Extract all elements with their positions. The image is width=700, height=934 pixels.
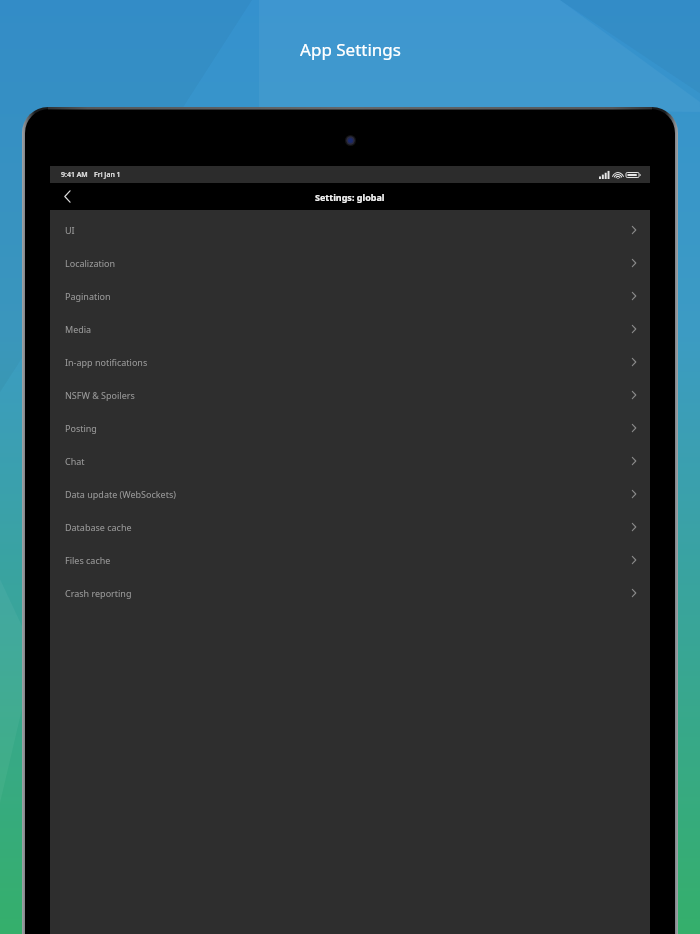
button[interactable]: Database cache xyxy=(50,510,650,543)
staticText: In-app notifications xyxy=(65,356,148,368)
staticText: Localization xyxy=(65,257,116,269)
staticText: NSFW & Spoilers xyxy=(65,389,135,401)
staticText: Crash reporting xyxy=(65,587,132,599)
button[interactable]: Localization xyxy=(50,246,650,279)
staticText: App Settings xyxy=(300,38,401,61)
staticText: Chat xyxy=(65,455,85,467)
staticText: UI xyxy=(65,224,75,236)
staticText: Settings: global xyxy=(315,191,385,203)
staticText: Data update (WebSockets) xyxy=(65,488,176,500)
button[interactable]: Chat xyxy=(50,444,650,477)
button[interactable]: Pagination xyxy=(50,279,650,312)
staticText: Fri Jan 1 xyxy=(94,170,121,180)
button[interactable]: Media xyxy=(50,312,650,345)
staticText: Pagination xyxy=(65,290,111,302)
button[interactable]: Data update (WebSockets) xyxy=(50,477,650,510)
button[interactable]: Posting xyxy=(50,411,650,444)
staticText: Files cache xyxy=(65,554,111,566)
button[interactable]: NSFW & Spoilers xyxy=(50,378,650,411)
button[interactable]: Crash reporting xyxy=(50,576,650,609)
button[interactable]: Files cache xyxy=(50,543,650,576)
staticText: Posting xyxy=(65,422,97,434)
staticText: 9:41 AM xyxy=(61,170,88,180)
button[interactable]: Back xyxy=(50,183,84,210)
staticText: Database cache xyxy=(65,521,132,533)
button[interactable]: In-app notifications xyxy=(50,345,650,378)
button[interactable]: UI xyxy=(50,213,650,246)
staticText: Media xyxy=(65,323,92,335)
